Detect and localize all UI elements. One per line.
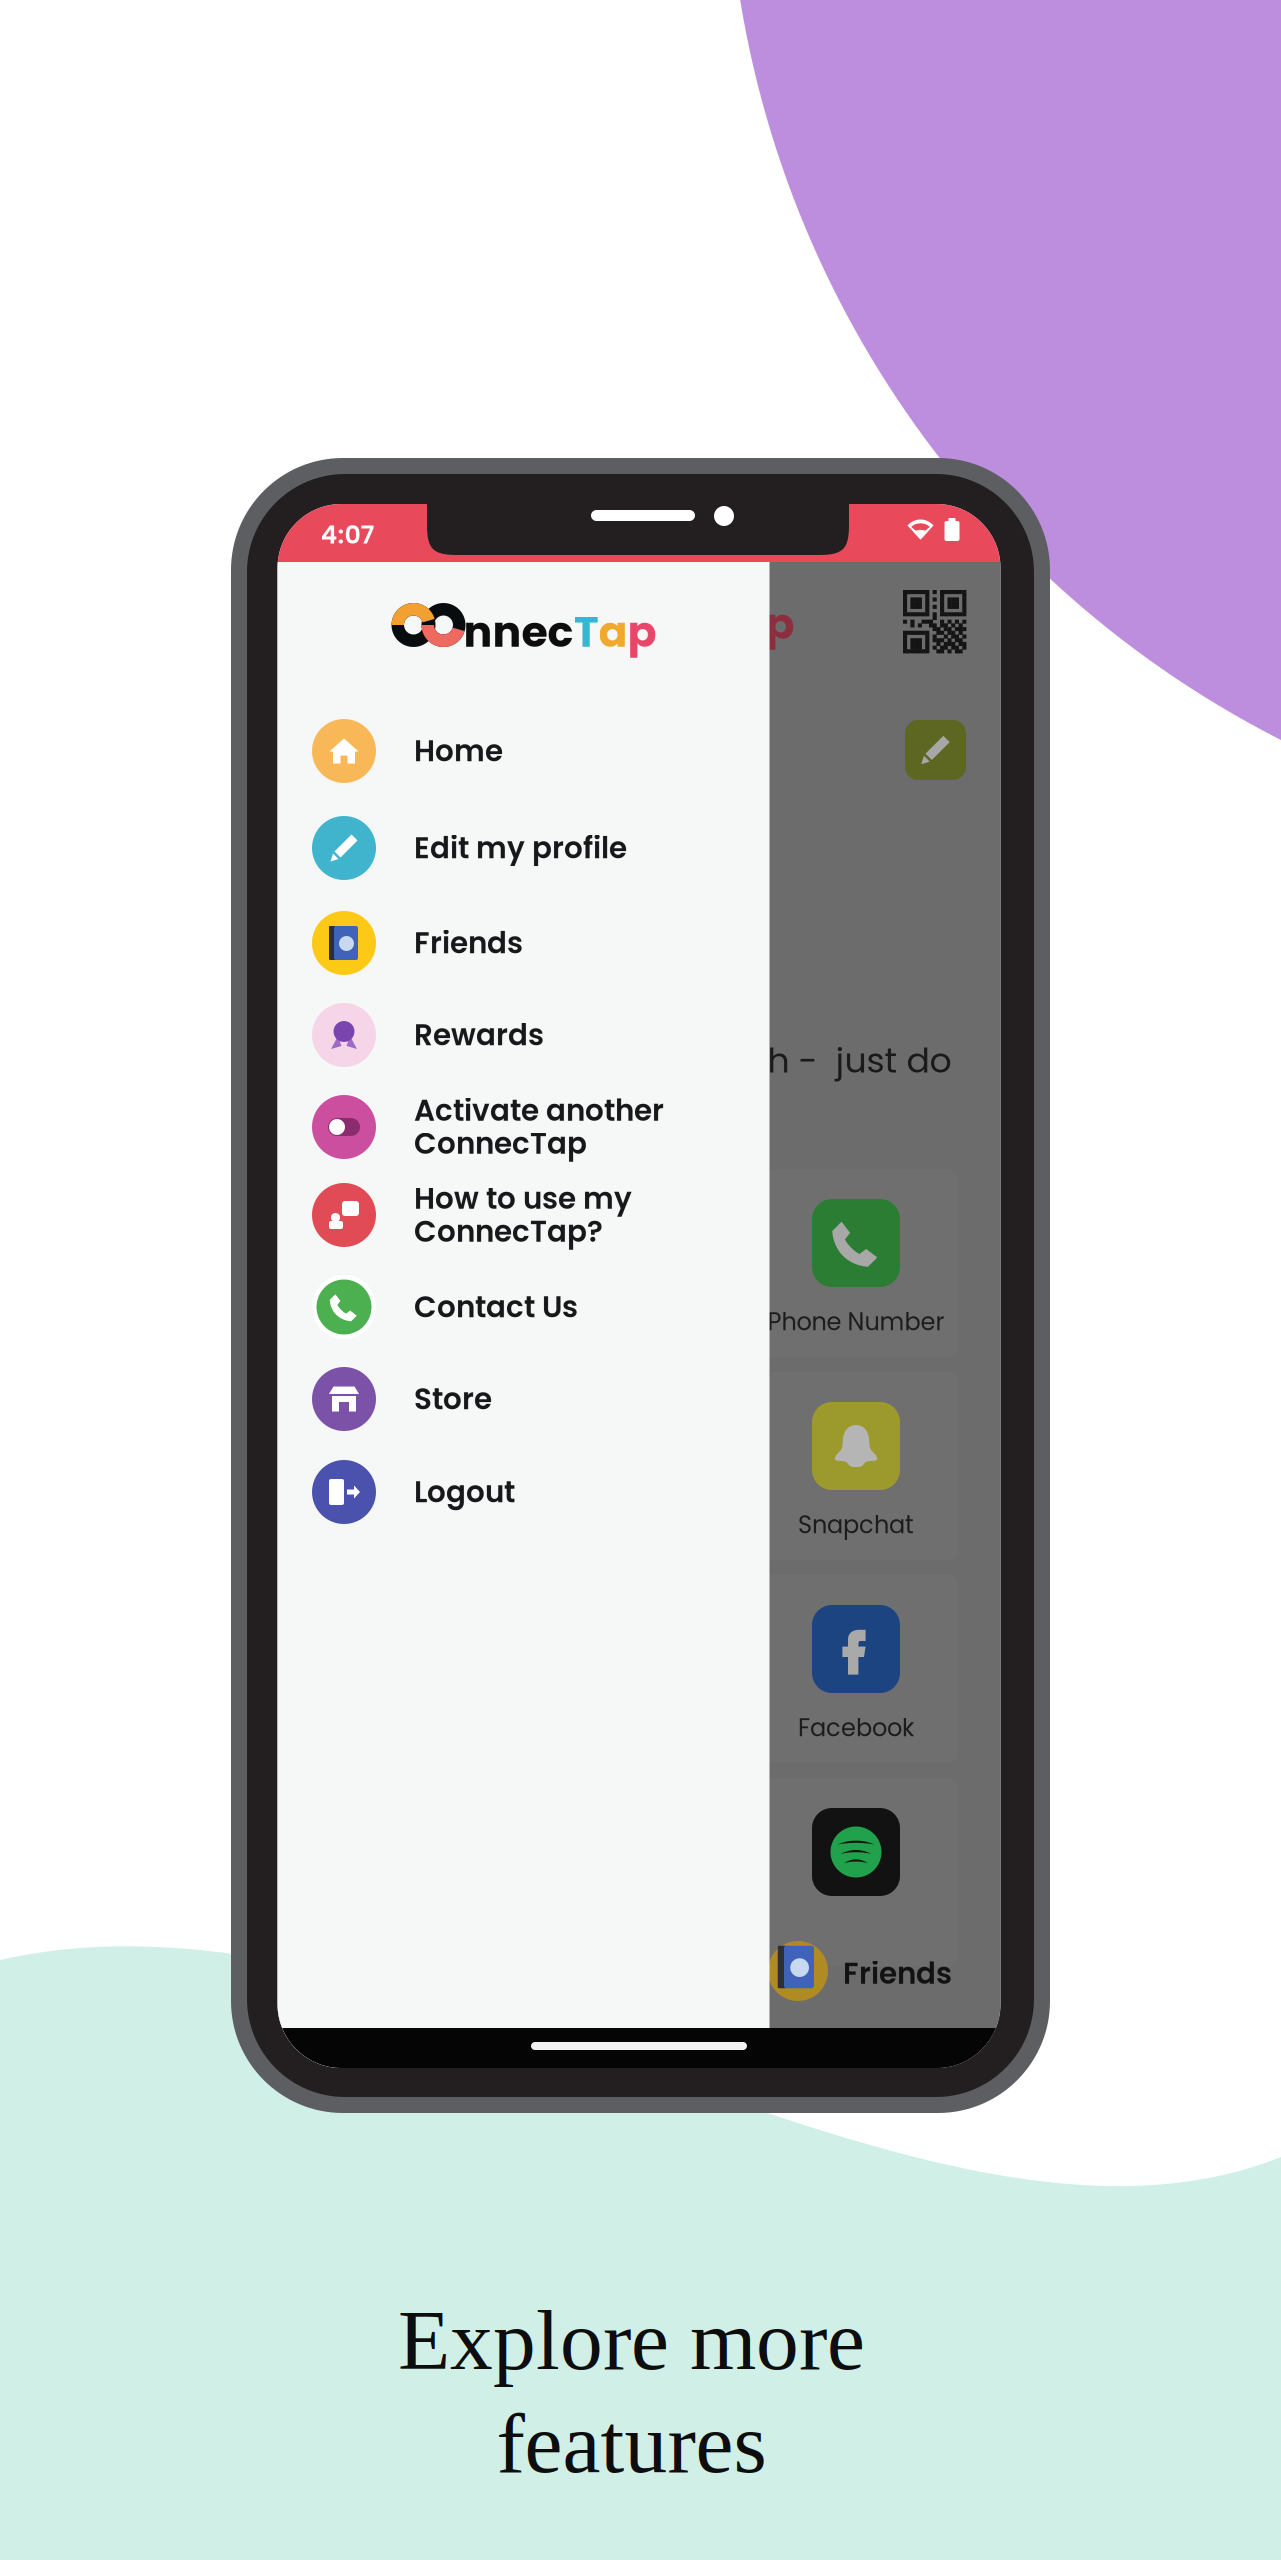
button[interactable]: Home	[277, 705, 769, 797]
button[interactable]: Edit my profile	[277, 802, 769, 894]
button[interactable]: Contact Us	[277, 1261, 769, 1353]
staticText: h - just do	[767, 1036, 951, 1084]
staticText: T	[573, 602, 598, 662]
staticText: nnec	[463, 602, 573, 662]
staticText: ConnecTap	[414, 1123, 587, 1164]
staticText: Explore more	[398, 2293, 865, 2387]
staticText: 4:07	[320, 517, 374, 552]
staticText: Store	[414, 1378, 492, 1420]
staticText: p	[627, 602, 656, 662]
staticText: Phone Number	[767, 1305, 944, 1339]
button[interactable]: Activate another	[277, 1081, 769, 1173]
button[interactable]: How to use my	[277, 1169, 769, 1261]
staticText: Snapchat	[798, 1508, 914, 1542]
staticText: Facebook	[798, 1711, 914, 1745]
staticText: How to use my	[414, 1178, 632, 1219]
staticText: p	[765, 594, 794, 654]
staticText: Rewards	[414, 1014, 544, 1056]
staticText: Activate another	[414, 1090, 664, 1131]
staticText: Contact Us	[414, 1286, 578, 1328]
button[interactable]: Friends	[277, 897, 769, 989]
staticText: features	[496, 2396, 766, 2490]
staticText: Friends	[414, 922, 523, 964]
staticText: Edit my profile	[414, 827, 627, 869]
staticText: Logout	[414, 1471, 515, 1513]
staticText: Friends	[843, 1953, 952, 1994]
button[interactable]: Logout	[277, 1446, 769, 1538]
button[interactable]: Rewards	[277, 989, 769, 1081]
staticText: Home	[414, 730, 503, 772]
staticText: a	[598, 602, 627, 662]
staticText: ConnecTap?	[414, 1211, 603, 1252]
button[interactable]: Store	[277, 1353, 769, 1445]
